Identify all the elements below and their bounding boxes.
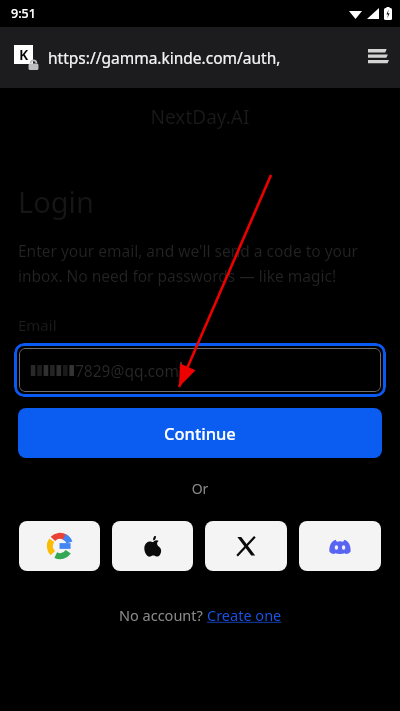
- staticText: Email: [18, 315, 57, 335]
- button[interactable]: Create one: [207, 605, 282, 625]
- staticText: https://gamma.kinde.com/auth,: [48, 47, 356, 68]
- button[interactable]: Tabs: [356, 27, 400, 88]
- button[interactable]: Continue: [18, 408, 382, 458]
- staticText: Or: [0, 479, 400, 498]
- staticText: Create one: [207, 605, 282, 625]
- button[interactable]: 7829@qq.com: [14, 343, 386, 397]
- staticText: K: [19, 45, 29, 64]
- button[interactable]: Sign in with Google: [19, 521, 100, 571]
- staticText: 9:51: [11, 5, 36, 22]
- button[interactable]: Sign in with Discord: [299, 521, 381, 571]
- staticText: Continue: [164, 422, 236, 444]
- staticText: 7829@qq.com: [75, 360, 179, 381]
- other: Secure connection: [27, 58, 40, 71]
- staticText: NextDay.AI: [0, 104, 400, 130]
- staticText: Login: [18, 182, 94, 221]
- button[interactable]: Sign in with X: [205, 521, 287, 571]
- staticText: Enter your email, and we'll send a code …: [18, 240, 378, 287]
- button[interactable]: Sign in with Apple: [112, 521, 193, 571]
- staticText: No account?: [119, 605, 207, 625]
